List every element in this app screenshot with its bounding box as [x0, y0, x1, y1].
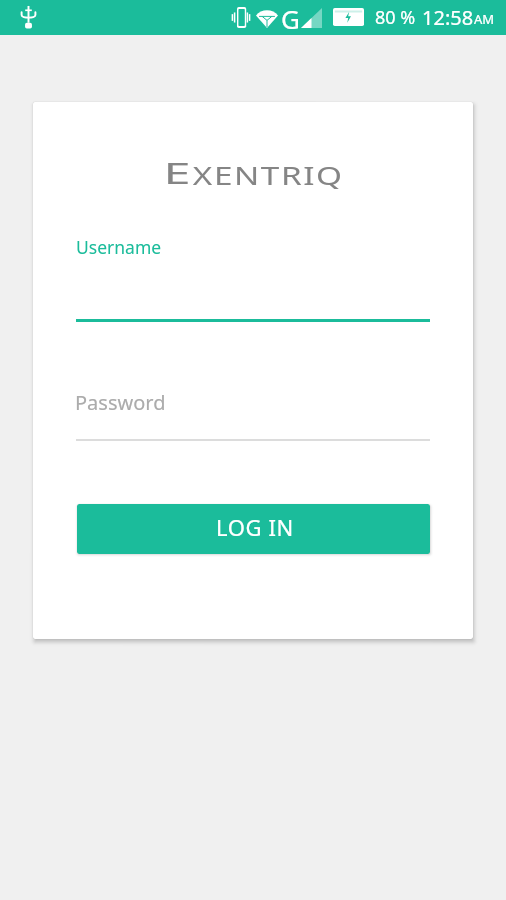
staticText: 12:58 — [422, 4, 474, 31]
staticText: AM — [474, 10, 495, 28]
other: Battery charging, 80 percent — [333, 8, 364, 26]
staticText: G — [281, 1, 300, 36]
button[interactable]: Password — [76, 381, 430, 441]
button[interactable]: LOG IN — [77, 504, 430, 554]
other: Vibrate mode — [231, 7, 251, 28]
staticText: E — [164, 153, 194, 192]
staticText: 80 % — [375, 5, 416, 30]
other: USB connected — [21, 5, 36, 29]
staticText: Username — [76, 235, 162, 259]
other: Wi-Fi connected — [256, 8, 278, 28]
button[interactable]: Username — [76, 228, 430, 322]
staticText: LOG IN — [216, 512, 294, 542]
staticText: Password — [75, 389, 166, 416]
other: Mobile signal — [301, 8, 322, 28]
staticText: XENTRIQ — [193, 158, 344, 192]
